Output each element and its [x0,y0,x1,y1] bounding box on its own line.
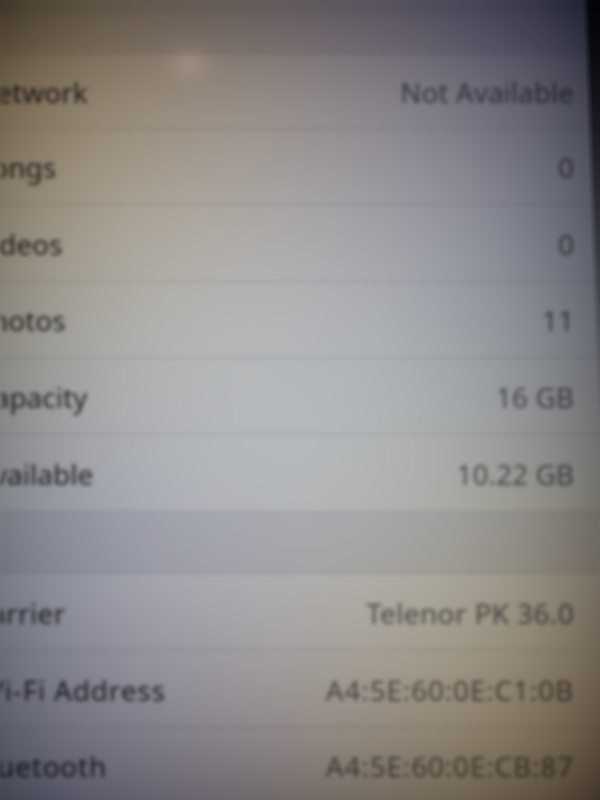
staticText: Telenor PK 36.0 [366,594,574,632]
button[interactable]: Photos [0,281,600,357]
staticText: 10.22 GB [456,455,574,493]
button[interactable]: Videos [0,204,600,281]
button[interactable]: Carrier [0,573,600,650]
staticText: Not Available [400,73,574,111]
button[interactable]: Capacity [0,357,600,434]
staticText: Bluetooth [0,747,108,785]
staticText: A4:5E:60:0E:C1:0B [325,671,574,709]
button[interactable]: Bluetooth [0,727,600,800]
staticText: Photos [0,301,66,339]
button[interactable]: Wi-Fi Address [0,650,600,727]
staticText: Capacity [0,378,88,416]
staticText: 16 GB [496,378,574,416]
staticText: 0 [557,225,574,263]
staticText: Available [0,455,94,493]
staticText: Network [0,73,88,111]
staticText: Wi-Fi Address [0,671,166,709]
button[interactable]: Songs [0,128,600,204]
staticText: 0 [557,148,574,186]
staticText: Carrier [0,594,66,632]
staticText: Songs [0,148,57,186]
button[interactable]: Network [0,53,600,128]
staticText: Videos [0,225,63,263]
button[interactable]: Available [0,434,600,511]
staticText: A4:5E:60:0E:CB:87 [325,747,574,785]
staticText: 11 [541,301,574,339]
